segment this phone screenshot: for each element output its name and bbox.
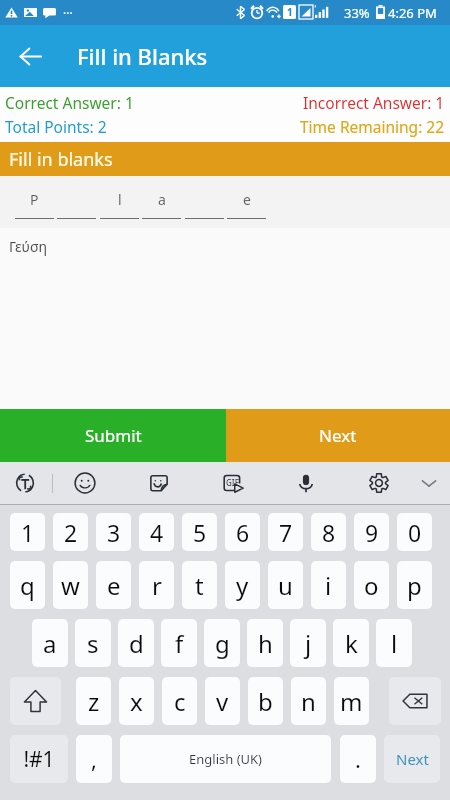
staticText: l xyxy=(391,627,398,660)
staticText: e xyxy=(243,190,251,209)
button[interactable]: k xyxy=(333,619,369,667)
staticText: 6 xyxy=(236,517,250,548)
staticText: h xyxy=(258,627,273,660)
button[interactable]: Translate xyxy=(6,464,44,502)
staticText: v xyxy=(216,685,229,718)
staticText: n xyxy=(301,685,316,718)
staticText: Correct Answer: 1 xyxy=(5,92,134,113)
staticText: 1 xyxy=(21,517,35,548)
button[interactable]: x xyxy=(119,677,154,725)
button[interactable]: . xyxy=(340,735,376,783)
staticText: e xyxy=(107,569,121,602)
button[interactable]: f xyxy=(161,619,197,667)
button[interactable]: i xyxy=(311,561,346,609)
button[interactable]: Emoji xyxy=(66,464,104,502)
button[interactable]: 2 xyxy=(53,513,88,551)
button[interactable]: t xyxy=(182,561,217,609)
button[interactable]: m xyxy=(334,677,369,725)
button[interactable]: 6 xyxy=(225,513,260,551)
staticText: x xyxy=(130,685,143,718)
button[interactable]: Backspace xyxy=(389,677,441,725)
staticText: Submit xyxy=(85,424,142,447)
staticText: , xyxy=(91,744,97,774)
button[interactable]: 1 xyxy=(10,513,45,551)
button[interactable]: o xyxy=(354,561,389,609)
staticText: 4:26 PM xyxy=(388,4,437,22)
button[interactable]: b xyxy=(248,677,283,725)
staticText: y xyxy=(236,569,249,602)
staticText: GIF xyxy=(226,477,239,488)
button[interactable]: y xyxy=(225,561,260,609)
button[interactable]: c xyxy=(162,677,197,725)
button[interactable]: 0 xyxy=(397,513,432,551)
button[interactable]: g xyxy=(204,619,240,667)
staticText: 9 xyxy=(365,517,379,548)
staticText: j xyxy=(305,627,312,660)
staticText: z xyxy=(88,685,100,718)
button[interactable]: Submit xyxy=(0,409,226,462)
staticText: l xyxy=(118,190,122,209)
staticText: d xyxy=(129,627,144,660)
staticText: a xyxy=(43,627,57,660)
staticText: . xyxy=(355,744,361,774)
staticText: a xyxy=(158,190,166,209)
staticText: p xyxy=(407,569,422,602)
button[interactable]: d xyxy=(118,619,154,667)
button[interactable]: l xyxy=(376,619,412,667)
button[interactable]: e xyxy=(96,561,131,609)
staticText: !#1 xyxy=(23,745,55,774)
button[interactable]: z xyxy=(76,677,111,725)
staticText: Next xyxy=(319,424,357,447)
button[interactable]: a xyxy=(32,619,68,667)
button[interactable]: , xyxy=(76,735,112,783)
staticText: 1 xyxy=(287,5,293,19)
button[interactable]: 3 xyxy=(96,513,131,551)
button[interactable]: Back xyxy=(6,32,54,80)
staticText: English (UK) xyxy=(189,750,262,768)
button[interactable]: English (UK) xyxy=(120,735,331,783)
button[interactable]: GIF xyxy=(214,464,252,502)
button[interactable]: Next xyxy=(226,409,450,462)
button[interactable]: 4 xyxy=(139,513,174,551)
button[interactable]: s xyxy=(75,619,111,667)
staticText: f xyxy=(175,627,184,660)
button[interactable]: n xyxy=(291,677,326,725)
button[interactable]: Hide keyboard xyxy=(410,464,448,502)
staticText: 7 xyxy=(279,517,293,548)
button[interactable]: Stickers xyxy=(140,464,178,502)
staticText: 0 xyxy=(408,517,422,548)
button[interactable]: Next xyxy=(384,735,440,783)
staticText: 33% xyxy=(344,4,370,22)
staticText: q xyxy=(20,569,35,602)
button[interactable]: 9 xyxy=(354,513,389,551)
button[interactable]: q xyxy=(10,561,45,609)
staticText: Γεύση xyxy=(9,237,48,256)
button[interactable]: r xyxy=(139,561,174,609)
button[interactable]: p xyxy=(397,561,432,609)
button[interactable]: Keyboard settings xyxy=(360,464,398,502)
button[interactable]: w xyxy=(53,561,88,609)
button[interactable]: !#1 xyxy=(10,735,68,783)
button[interactable]: 8 xyxy=(311,513,346,551)
button[interactable]: Shift xyxy=(10,677,61,725)
staticText: 5 xyxy=(193,517,207,548)
button[interactable]: 7 xyxy=(268,513,303,551)
staticText: o xyxy=(364,569,379,602)
staticText: u xyxy=(278,569,293,602)
button[interactable]: Voice input xyxy=(287,464,325,502)
button[interactable]: u xyxy=(268,561,303,609)
staticText: r xyxy=(152,569,162,602)
staticText: i xyxy=(325,569,332,602)
staticText: 2 xyxy=(64,517,78,548)
staticText: 4 xyxy=(150,517,164,548)
staticText: ··· xyxy=(63,5,73,21)
button[interactable]: j xyxy=(290,619,326,667)
button[interactable]: 5 xyxy=(182,513,217,551)
staticText: s xyxy=(87,627,99,660)
staticText: Next xyxy=(396,749,429,769)
button[interactable]: v xyxy=(205,677,240,725)
staticText: Fill in Blanks xyxy=(77,41,208,71)
button[interactable]: h xyxy=(247,619,283,667)
staticText: Time Remaining: 22 xyxy=(300,116,445,137)
staticText: c xyxy=(174,685,186,718)
